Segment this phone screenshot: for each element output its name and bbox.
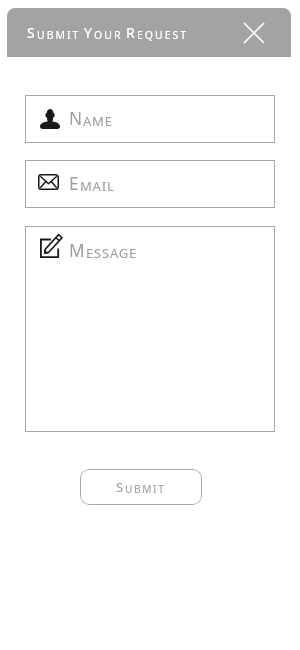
button[interactable]: M [25, 226, 275, 432]
staticText: UBMIT [37, 28, 81, 42]
staticText: N [69, 107, 83, 130]
staticText: S [27, 23, 37, 42]
staticText: R [126, 23, 137, 42]
staticText: Y [84, 23, 94, 42]
button[interactable]: E [25, 160, 275, 208]
staticText: OUR [94, 28, 123, 42]
staticText: ESSAGE [86, 244, 138, 262]
staticText: EQUEST [137, 28, 189, 42]
button[interactable]: S [80, 469, 202, 505]
button[interactable]: N [25, 95, 275, 143]
staticText: MAIL [80, 177, 115, 195]
button[interactable]: Close [237, 16, 271, 50]
staticText: AME [83, 112, 113, 130]
staticText: E [69, 172, 80, 195]
staticText: UBMIT [125, 482, 166, 496]
staticText: M [69, 239, 86, 262]
staticText: S [116, 478, 125, 496]
